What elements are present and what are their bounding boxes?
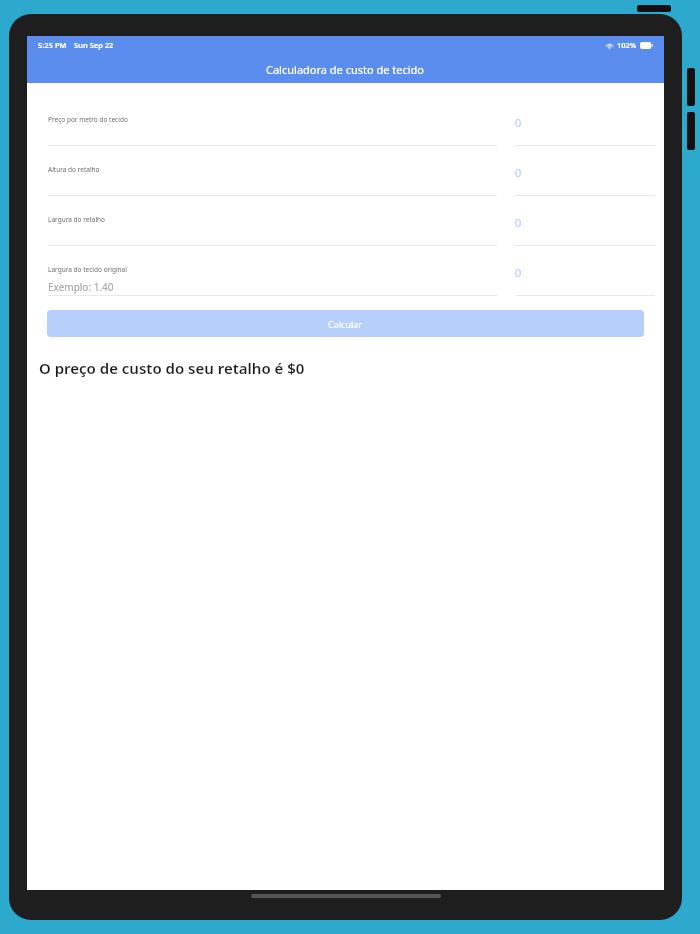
staticText: 0 [515, 265, 522, 280]
staticText: 102% [617, 40, 637, 50]
button[interactable]: Largura do tecido original [27, 251, 664, 301]
staticText: O preço de custo do seu retalho é $0 [39, 358, 305, 378]
staticText: Sun Sep 22 [74, 40, 114, 50]
staticText: Largura do tecido original [48, 265, 127, 274]
staticText: 5:25 PM [38, 40, 67, 50]
button[interactable]: Calcular [47, 310, 644, 337]
staticText: 0 [515, 115, 522, 130]
other: Volume up [687, 68, 695, 106]
button[interactable]: Largura do retalho [27, 201, 664, 251]
staticText: Calcular [328, 318, 363, 330]
staticText: Exemplo: 1.40 [48, 280, 114, 294]
button[interactable]: Preço por metro do tecido [27, 101, 664, 151]
staticText: 0 [515, 165, 522, 180]
other: Power button [637, 5, 671, 12]
button[interactable]: Altura do retalho [27, 151, 664, 201]
staticText: 0 [515, 215, 522, 230]
staticText: Altura do retalho [48, 165, 100, 174]
staticText: Largura do retalho [48, 215, 106, 224]
staticText: Calculadora de custo de tecido [266, 62, 425, 77]
other: Volume down [687, 112, 695, 150]
staticText: Preço por metro do tecido [48, 115, 128, 124]
